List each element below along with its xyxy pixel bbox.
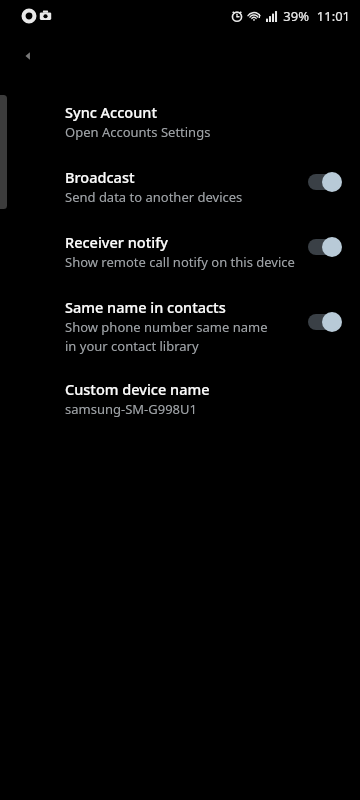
- staticText: Receiver notify: [65, 232, 168, 252]
- button[interactable]: Receiver notify: [0, 230, 360, 271]
- button[interactable]: Same name in contacts toggle, on: [303, 308, 347, 336]
- staticText: Open Accounts Settings: [65, 123, 305, 141]
- staticText: Custom device name: [65, 379, 210, 399]
- button[interactable]: Broadcast toggle, on: [303, 168, 347, 196]
- staticText: Show remote call notify on this device: [65, 253, 305, 271]
- staticText: Show phone number same name in your cont…: [65, 318, 275, 355]
- button[interactable]: Custom device name: [0, 377, 360, 418]
- staticText: Same name in contacts: [65, 297, 226, 317]
- button[interactable]: Same name in contacts: [0, 295, 360, 355]
- button[interactable]: Sync Account: [0, 100, 360, 141]
- button[interactable]: Back: [8, 36, 48, 76]
- button[interactable]: Receiver notify toggle, on: [303, 233, 347, 261]
- staticText: 11:01: [316, 7, 350, 25]
- button[interactable]: Broadcast: [0, 165, 360, 206]
- staticText: Broadcast: [65, 167, 135, 187]
- staticText: Send data to another devices: [65, 188, 305, 206]
- staticText: 39%: [283, 7, 309, 25]
- staticText: Sync Account: [65, 102, 157, 122]
- staticText: samsung-SM-G998U1: [65, 400, 305, 418]
